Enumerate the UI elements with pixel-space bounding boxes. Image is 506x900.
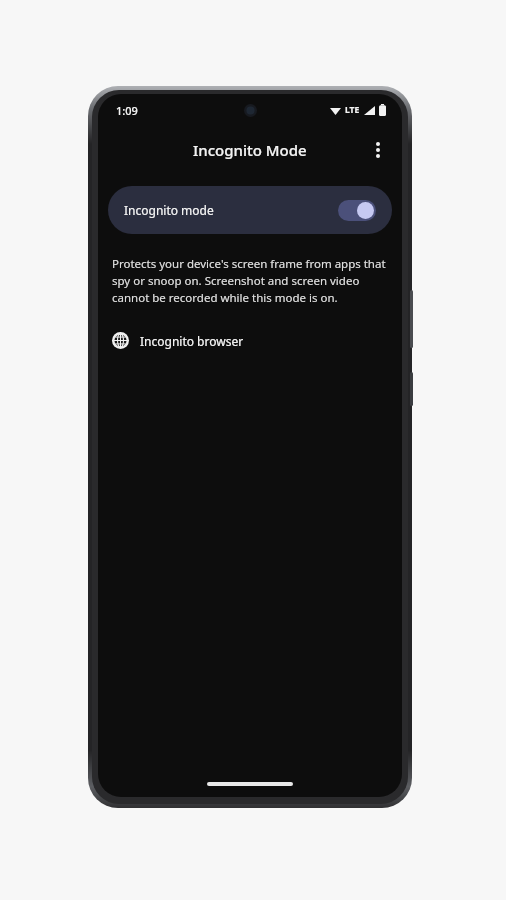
- button[interactable]: More options: [358, 130, 398, 170]
- staticText: Incognito browser: [140, 333, 244, 349]
- other: Incognito mode toggle, on: [338, 200, 376, 221]
- button[interactable]: Incognito browser: [98, 328, 402, 353]
- staticText: Protects your device's screen frame from…: [112, 256, 388, 306]
- staticText: 1:09: [116, 103, 138, 118]
- button[interactable]: Incognito mode: [108, 186, 392, 234]
- staticText: LTE: [345, 104, 360, 116]
- staticText: Incognito Mode: [193, 140, 307, 160]
- staticText: Incognito mode: [124, 202, 338, 218]
